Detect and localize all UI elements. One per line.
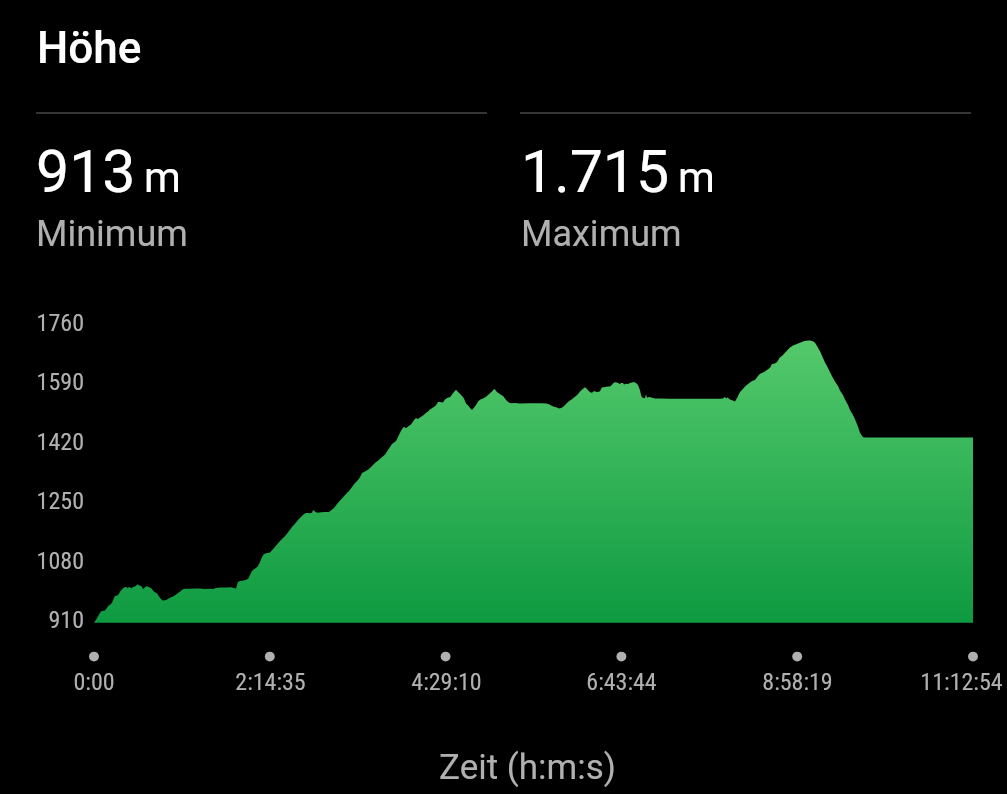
staticText: 910: [48, 606, 84, 634]
staticText: 11:12:54: [920, 668, 1003, 696]
staticText: Minimum: [36, 213, 188, 255]
staticText: 1.715: [521, 137, 670, 206]
button[interactable]: Maximum: [521, 137, 715, 248]
staticText: 1760: [36, 309, 84, 337]
staticText: 1590: [36, 368, 84, 396]
staticText: 2:14:35: [235, 668, 306, 696]
staticText: 1080: [36, 547, 84, 575]
staticText: 1250: [36, 487, 84, 515]
staticText: 913: [36, 137, 136, 206]
staticText: m: [678, 153, 715, 202]
other: Höhenprofil über die Zeit: [0, 0, 1007, 794]
staticText: Zeit (h:m:s): [439, 747, 616, 788]
button[interactable]: Höhe: [37, 22, 142, 74]
staticText: 6:43:44: [586, 668, 657, 696]
staticText: Maximum: [521, 213, 682, 255]
button[interactable]: Minimum: [36, 137, 188, 248]
staticText: 4:29:10: [411, 668, 482, 696]
staticText: 1420: [36, 428, 84, 456]
staticText: m: [144, 153, 181, 202]
staticText: 0:00: [73, 668, 115, 696]
staticText: 8:58:19: [762, 668, 833, 696]
